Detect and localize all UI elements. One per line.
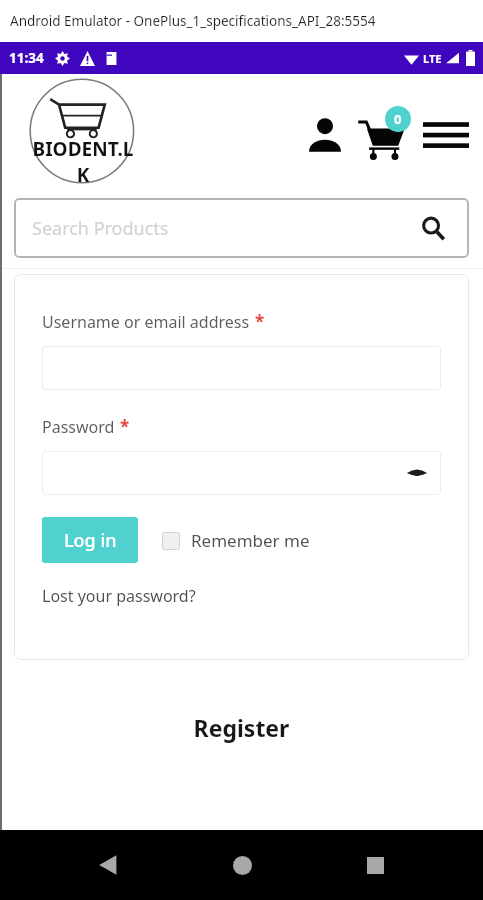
staticText: 11:34 <box>9 49 44 67</box>
button[interactable]: Search Products <box>14 198 469 258</box>
staticText: Password <box>42 416 115 438</box>
button[interactable]: Show password <box>42 451 441 495</box>
button[interactable]: Remember me <box>162 529 310 552</box>
button[interactable]: Recent apps <box>349 839 401 891</box>
button[interactable]: Lost your password? <box>42 585 196 607</box>
staticText: LTE <box>423 51 442 66</box>
button[interactable]: Menu <box>420 109 472 161</box>
staticText: Log in <box>64 528 117 553</box>
button[interactable]: BIODENT.LK home <box>28 76 138 186</box>
staticText: Register <box>0 712 483 743</box>
staticText: * <box>120 415 130 438</box>
button[interactable]: My account <box>303 113 347 157</box>
staticText: Android Emulator - OnePlus_1_specificati… <box>10 12 376 30</box>
button[interactable]: Cart, 0 items <box>354 107 410 163</box>
button[interactable]: Home <box>216 839 268 891</box>
staticText: Search Products <box>32 216 169 241</box>
button[interactable] <box>42 346 441 390</box>
staticText: Username or email address <box>42 311 250 333</box>
button[interactable]: Log in <box>42 517 138 563</box>
staticText: * <box>255 310 265 333</box>
other: Search <box>419 214 447 242</box>
staticText: BIODENT.LK <box>28 136 138 186</box>
button[interactable]: Show password <box>405 461 429 485</box>
button[interactable]: Back <box>82 839 134 891</box>
staticText: 0 <box>394 110 402 128</box>
staticText: Remember me <box>191 529 310 552</box>
